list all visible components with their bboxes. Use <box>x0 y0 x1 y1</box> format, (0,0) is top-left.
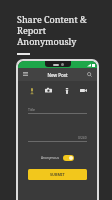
button[interactable]: Attach file <box>62 86 71 95</box>
staticText: New Post <box>47 72 68 78</box>
button[interactable]: Take photo <box>44 86 53 95</box>
button[interactable]: Search <box>86 71 93 78</box>
button[interactable]: 0/240 <box>28 132 87 142</box>
button[interactable]: Record video <box>79 86 88 95</box>
button[interactable]: SUBMIT <box>28 169 87 180</box>
button[interactable]: Title <box>28 104 87 114</box>
staticText: Share Content & Report Anonymously <box>17 13 87 47</box>
button[interactable]: Record audio <box>27 86 36 95</box>
staticText: SUBMIT <box>50 172 65 177</box>
staticText: Anonymous <box>41 156 59 160</box>
button[interactable]: Anonymous <box>28 153 87 162</box>
staticText: Title <box>28 107 35 112</box>
staticText: 0/240 <box>78 136 87 140</box>
button[interactable]: Menu <box>22 71 29 78</box>
